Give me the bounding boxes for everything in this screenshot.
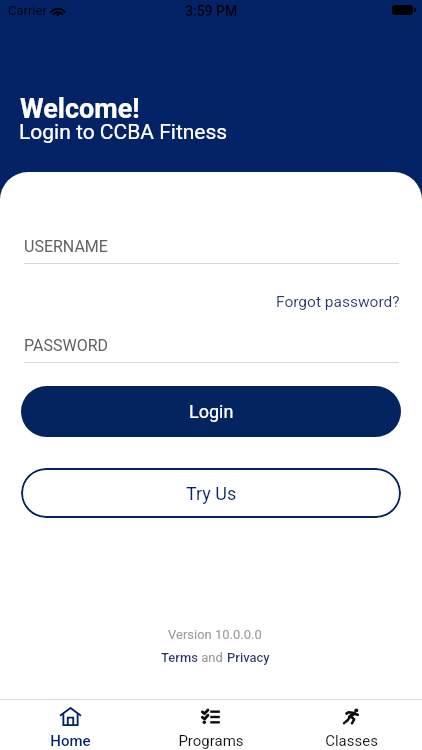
staticText: Try Us <box>186 483 237 504</box>
staticText: and <box>198 650 227 665</box>
staticText: Privacy <box>227 650 270 665</box>
staticText: Programs <box>178 732 244 750</box>
button[interactable]: Login <box>21 386 401 437</box>
button[interactable]: Forgot password? <box>276 293 400 311</box>
staticText: USERNAME <box>24 237 108 256</box>
staticText: Home <box>50 732 91 750</box>
staticText: Login to CCBA Fitness <box>19 120 228 145</box>
staticText: 3:59 PM <box>185 3 238 19</box>
staticText: Login <box>189 401 234 422</box>
button[interactable]: Try Us <box>21 468 401 518</box>
staticText: Classes <box>325 732 378 750</box>
staticText: PASSWORD <box>24 336 109 355</box>
button[interactable]: Privacy <box>227 650 270 665</box>
staticText: Carrier <box>8 3 47 18</box>
staticText: Forgot password? <box>276 293 400 311</box>
staticText: Welcome! <box>20 93 140 125</box>
button[interactable]: Terms <box>161 650 198 665</box>
other: Wi-Fi signal <box>51 5 65 16</box>
button[interactable]: Classes <box>281 700 422 750</box>
staticText: Terms <box>161 650 198 665</box>
button[interactable]: Programs <box>140 700 281 750</box>
button[interactable]: Home <box>0 700 140 750</box>
other: Battery full <box>392 5 416 15</box>
staticText: Version 10.0.0.0 <box>168 627 262 642</box>
